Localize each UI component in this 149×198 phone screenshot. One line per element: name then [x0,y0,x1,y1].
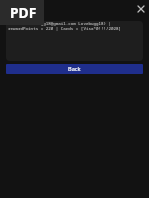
staticText: rewardPoints = 220 | Cards = [Visa*0!!!/… [8,26,122,32]
button[interactable]: Close [134,2,148,16]
staticText: Back [68,65,81,73]
staticText: name = lovebugg18@gmail.com Lovebugg18) … [8,21,112,27]
button[interactable]: Back [6,64,143,74]
staticText: PDF [10,3,37,22]
